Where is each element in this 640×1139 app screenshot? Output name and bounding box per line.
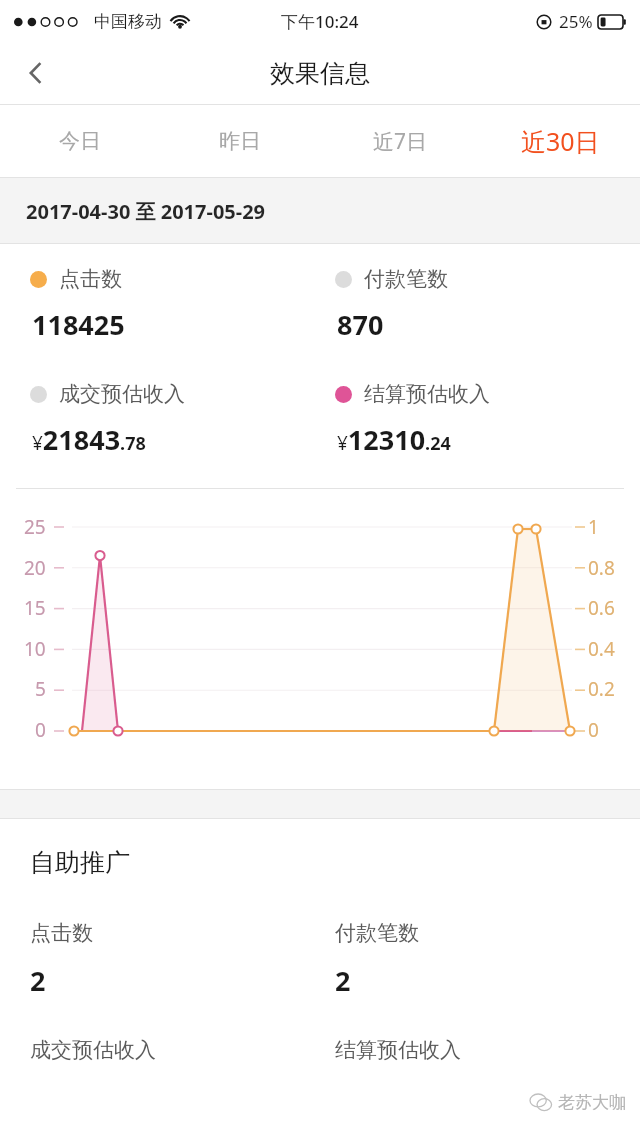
button[interactable]: 结算预估收入 xyxy=(335,381,640,458)
staticText: 118425 xyxy=(32,306,125,343)
staticText: 自助推广 xyxy=(30,847,130,878)
staticText: 2017-04-30 至 2017-05-29 xyxy=(26,198,266,225)
staticText: 点击数 xyxy=(30,920,93,946)
staticText: 结算预估收入 xyxy=(364,381,490,407)
staticText: 10 xyxy=(24,636,46,662)
staticText: 近30日 xyxy=(521,124,600,158)
staticText: 1 xyxy=(588,514,599,540)
button[interactable]: 今日 xyxy=(0,105,160,177)
staticText: 老苏大咖 xyxy=(558,1092,626,1113)
staticText: 5 xyxy=(35,676,46,702)
button[interactable]: 昨日 xyxy=(160,105,320,177)
staticText: 2 xyxy=(335,962,351,999)
staticText: 点击数 xyxy=(59,266,122,292)
staticText: 20 xyxy=(24,555,46,581)
staticText: 付款笔数 xyxy=(335,920,419,946)
button[interactable]: 点击数 xyxy=(30,920,335,999)
staticText: 结算预估收入 xyxy=(335,1037,461,1063)
staticText: 0.6 xyxy=(588,595,615,621)
button[interactable]: 成交预估收入 xyxy=(30,381,335,458)
staticText: 付款笔数 xyxy=(364,266,448,292)
staticText: ¥21843.78 xyxy=(32,421,146,458)
staticText: 25 xyxy=(24,514,46,540)
staticText: 成交预估收入 xyxy=(30,1037,156,1063)
staticText: 0.2 xyxy=(588,676,615,702)
button[interactable]: 近30日 xyxy=(480,105,640,177)
staticText: ¥12310.24 xyxy=(337,421,451,458)
staticText: 今日 xyxy=(59,128,101,154)
button[interactable]: Back xyxy=(0,42,72,104)
staticText: 0.8 xyxy=(588,555,615,581)
button[interactable]: 成交预估收入 xyxy=(30,1037,335,1063)
staticText: 近7日 xyxy=(373,127,428,156)
staticText: 870 xyxy=(337,306,384,343)
staticText: 15 xyxy=(24,595,46,621)
button[interactable]: 付款笔数 xyxy=(335,266,640,343)
button[interactable]: 点击数 xyxy=(30,266,335,343)
staticText: 下午10:24 xyxy=(281,10,359,33)
staticText: 0.4 xyxy=(588,636,615,662)
staticText: 成交预估收入 xyxy=(59,381,185,407)
staticText: 2 xyxy=(30,962,46,999)
staticText: 效果信息 xyxy=(270,58,370,89)
staticText: 0 xyxy=(35,717,46,743)
button[interactable]: 近7日 xyxy=(320,105,480,177)
staticText: 昨日 xyxy=(219,128,261,154)
button[interactable]: 结算预估收入 xyxy=(335,1037,640,1063)
button[interactable]: 付款笔数 xyxy=(335,920,640,999)
staticText: 0 xyxy=(588,717,599,743)
staticText: 25% xyxy=(559,10,593,33)
staticText: 中国移动 xyxy=(94,11,162,32)
